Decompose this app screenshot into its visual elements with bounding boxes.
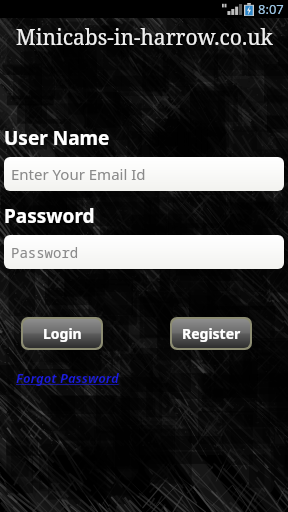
staticText: Register — [182, 324, 241, 343]
staticText: Enter Your Email Id — [11, 164, 146, 184]
button[interactable]: Password — [4, 235, 284, 269]
button[interactable]: Login — [23, 319, 101, 348]
staticText: Password — [11, 243, 79, 262]
button[interactable]: Forgot Password — [16, 369, 119, 387]
staticText: Login — [43, 324, 82, 343]
staticText: Minicabs-in-harrow.co.uk — [16, 23, 273, 52]
staticText: Password — [4, 203, 95, 229]
staticText: Forgot Password — [16, 369, 119, 387]
button[interactable]: Enter Your Email Id — [4, 157, 284, 191]
staticText: 8:07 — [258, 0, 284, 18]
staticText: User Name — [4, 125, 110, 151]
button[interactable]: Register — [172, 319, 250, 348]
